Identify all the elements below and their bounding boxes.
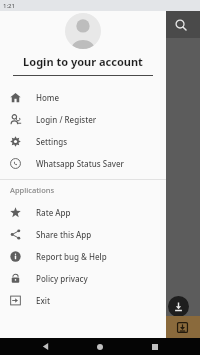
button[interactable]: Rate App [0, 201, 166, 223]
button[interactable]: Share this App [0, 223, 166, 245]
button[interactable]: Download [168, 296, 189, 317]
button[interactable]: Download all [165, 316, 200, 338]
button[interactable]: Home [90, 338, 110, 355]
staticText: Settings [36, 136, 68, 147]
button[interactable]: Search [170, 14, 192, 36]
button[interactable]: Settings [0, 130, 166, 152]
button[interactable]: Recent apps [145, 338, 165, 355]
button[interactable]: Exit [0, 289, 166, 311]
staticText: Login to your account [0, 54, 166, 69]
button[interactable]: Report bug & Help [0, 245, 166, 267]
button[interactable]: Profile photo [65, 13, 101, 49]
button[interactable]: Back [35, 338, 55, 355]
staticText: Report bug & Help [36, 251, 107, 262]
button[interactable]: Login / Register [0, 108, 166, 130]
staticText: Share this App [36, 229, 92, 240]
staticText: Home [36, 92, 60, 103]
staticText: 1:21 [3, 2, 15, 10]
staticText: Exit [36, 295, 51, 306]
button[interactable]: Policy privacy [0, 267, 166, 289]
button[interactable]: Home [0, 86, 166, 108]
staticText: Whatsapp Status Saver [36, 158, 124, 169]
staticText: Rate App [36, 207, 71, 218]
staticText: Login / Register [36, 114, 97, 125]
staticText: Applications [10, 185, 55, 195]
button[interactable]: Whatsapp Status Saver [0, 152, 166, 174]
staticText: Policy privacy [36, 273, 88, 284]
